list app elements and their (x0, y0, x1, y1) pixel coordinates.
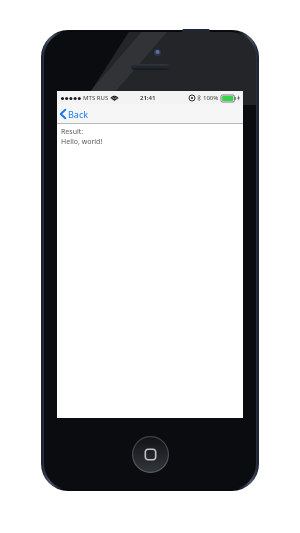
staticText: MTS RUS (83, 94, 109, 102)
staticText: Back (68, 108, 89, 120)
staticText: Result: (61, 127, 84, 137)
staticText: 100% (203, 94, 219, 102)
staticText: 21:41 (140, 94, 156, 102)
staticText: Hello, world! (61, 137, 103, 147)
button[interactable]: Back (57, 104, 95, 124)
